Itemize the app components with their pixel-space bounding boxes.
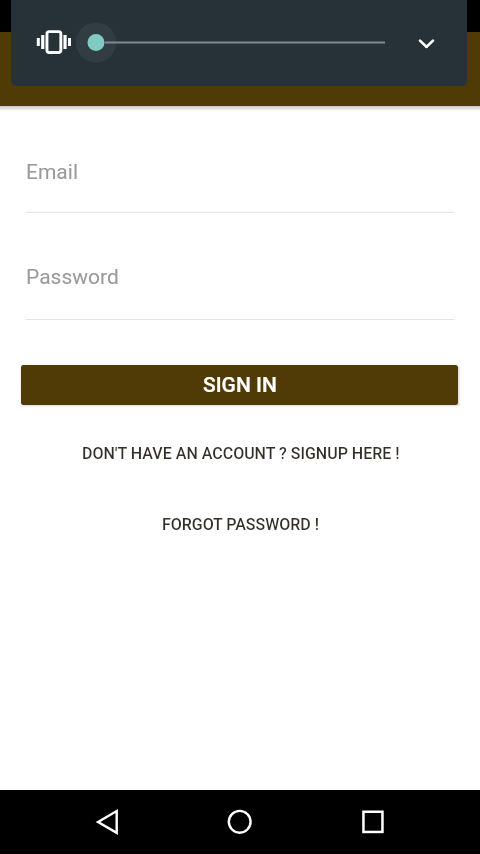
button[interactable]: Back xyxy=(83,798,131,846)
button[interactable]: Ringer mode: vibrate xyxy=(31,19,77,65)
staticText: FORGOT PASSWORD ! xyxy=(162,515,320,534)
button[interactable]: FORGOT PASSWORD ! xyxy=(162,515,320,534)
button[interactable]: Home xyxy=(216,798,264,846)
button[interactable]: Expand volume controls xyxy=(396,20,441,65)
button[interactable]: Email xyxy=(26,155,454,213)
button[interactable]: Recent apps xyxy=(349,798,397,846)
button[interactable]: DON'T HAVE AN ACCOUNT ? SIGNUP HERE ! xyxy=(82,444,400,463)
staticText: DON'T HAVE AN ACCOUNT ? SIGNUP HERE ! xyxy=(82,444,400,463)
staticText: Password xyxy=(26,265,119,290)
staticText: Email xyxy=(26,160,78,185)
staticText: SIGN IN xyxy=(203,373,277,398)
button[interactable]: Password xyxy=(26,260,454,320)
button[interactable]: SIGN IN xyxy=(21,365,458,405)
